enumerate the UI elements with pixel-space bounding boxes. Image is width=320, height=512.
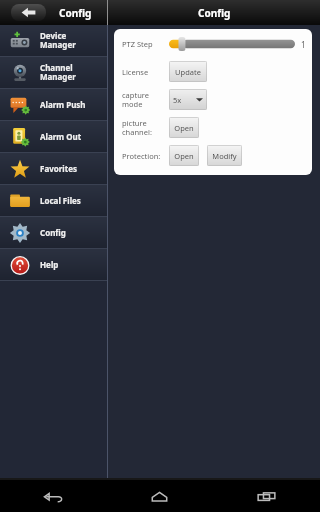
staticText: Favorites <box>40 163 77 174</box>
staticText: Local Files <box>40 195 81 206</box>
button[interactable]: Alarm Out <box>0 121 107 152</box>
staticText: Device Manager <box>40 30 76 51</box>
staticText: Update <box>175 67 201 77</box>
staticText: Alarm Out <box>40 131 82 142</box>
staticText: Config <box>198 6 231 20</box>
button[interactable]: Open <box>169 145 199 166</box>
staticText: Open <box>174 151 194 161</box>
button[interactable]: Back <box>0 480 106 512</box>
button[interactable]: Channel Manager <box>0 57 107 88</box>
button[interactable]: Help <box>0 249 107 280</box>
button[interactable]: Back <box>11 4 46 21</box>
button[interactable]: Recent apps <box>213 480 320 512</box>
staticText: Config <box>40 227 66 238</box>
staticText: 1 <box>301 39 306 50</box>
button[interactable]: Device Manager <box>0 25 107 56</box>
button[interactable]: Update <box>169 61 207 82</box>
staticText: picture channel: <box>122 118 169 137</box>
staticText: Modify <box>212 151 237 161</box>
staticText: PTZ Step <box>122 39 169 49</box>
button[interactable]: Alarm Push <box>0 89 107 120</box>
staticText: Config <box>59 6 92 20</box>
staticText: Channel Manager <box>40 62 76 83</box>
button[interactable]: 5x <box>169 89 207 110</box>
button[interactable]: Favorites <box>0 153 107 184</box>
button[interactable]: Local Files <box>0 185 107 216</box>
button[interactable]: Home <box>106 480 213 512</box>
button[interactable] <box>169 37 295 51</box>
staticText: License <box>122 67 169 77</box>
staticText: Open <box>174 123 194 133</box>
button[interactable]: Modify <box>207 145 242 166</box>
button[interactable]: Open <box>169 117 199 138</box>
staticText: Protection: <box>122 151 169 161</box>
staticText: Alarm Push <box>40 99 86 110</box>
button[interactable]: Config <box>0 217 107 248</box>
staticText: 5x <box>173 95 182 105</box>
staticText: Help <box>40 259 59 270</box>
staticText: capture mode <box>122 90 169 109</box>
